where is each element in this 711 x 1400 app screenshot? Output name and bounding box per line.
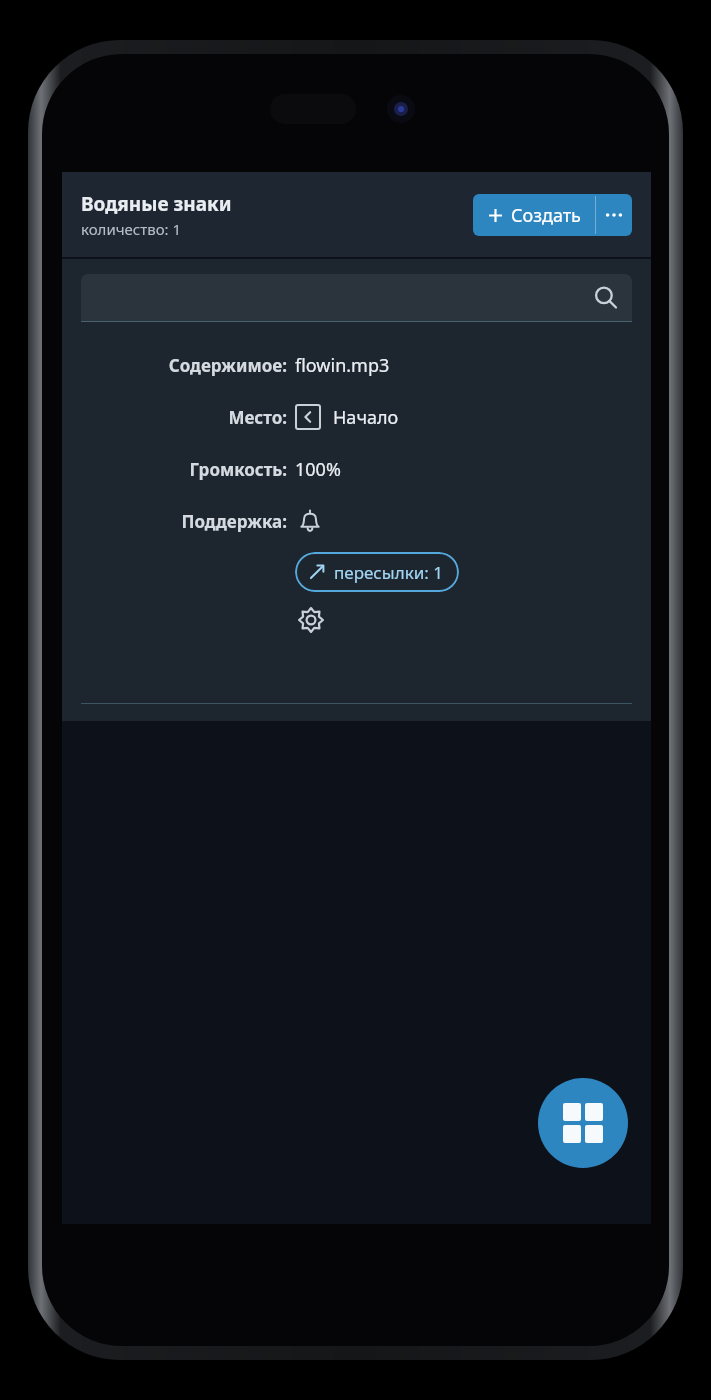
staticText: Содержимое: (168, 354, 287, 377)
button[interactable]: Настройки (295, 604, 327, 636)
staticText: количество: 1 (81, 219, 182, 239)
staticText: Поддержка: (181, 510, 287, 533)
button[interactable]: Начало (295, 404, 321, 430)
button[interactable]: Создать (473, 194, 595, 236)
button[interactable] (81, 274, 632, 322)
button[interactable]: Сетка (538, 1078, 628, 1168)
staticText: 100% (295, 457, 341, 482)
button[interactable]: Уведомления (295, 506, 325, 536)
staticText: Создать (511, 203, 581, 228)
staticText: flowin.mp3 (295, 353, 390, 378)
staticText: Место: (228, 406, 287, 429)
staticText: пересылки: 1 (334, 561, 443, 584)
staticText: Громкость: (189, 458, 287, 481)
staticText: Водяные знаки (81, 191, 232, 217)
staticText: Начало (333, 405, 399, 430)
button[interactable]: Дополнительно (596, 194, 632, 236)
button[interactable]: пересылки: 1 (295, 552, 459, 592)
